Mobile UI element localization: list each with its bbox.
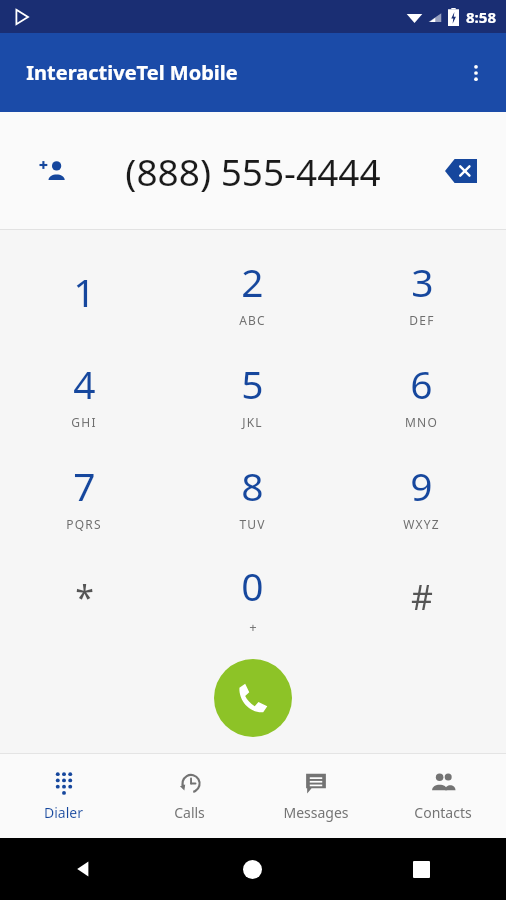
button[interactable]: # — [337, 546, 506, 648]
staticText: 3 — [411, 255, 434, 308]
staticText: 4 — [73, 357, 96, 410]
staticText: JKL — [242, 414, 263, 430]
button[interactable]: Add contact — [30, 148, 76, 194]
staticText: 8:58 — [466, 7, 496, 27]
staticText: 9 — [410, 459, 433, 512]
staticText: Dialer — [44, 803, 83, 822]
staticText: TUV — [239, 516, 266, 532]
staticText: Contacts — [414, 803, 472, 822]
button[interactable]: 3 — [337, 240, 506, 342]
staticText: 5 — [241, 357, 264, 410]
button[interactable]: 0 — [168, 546, 337, 648]
button[interactable]: 5 — [168, 342, 337, 444]
button[interactable]: 2 — [168, 240, 337, 342]
button[interactable]: Calls — [126, 754, 252, 838]
button[interactable]: 1 — [0, 240, 168, 342]
staticText: PQRS — [66, 516, 102, 532]
staticText: * — [75, 574, 94, 620]
button[interactable]: Messages — [252, 754, 379, 838]
button[interactable]: More options — [454, 51, 498, 95]
staticText: 6 — [410, 357, 433, 410]
button[interactable]: Call — [214, 659, 292, 737]
staticText: 8 — [241, 459, 264, 512]
button[interactable]: 9 — [337, 444, 506, 546]
staticText: MNO — [405, 414, 438, 430]
staticText: InteractiveTel Mobile — [26, 59, 238, 86]
button[interactable]: 7 — [0, 444, 168, 546]
staticText: 7 — [73, 459, 96, 512]
button[interactable]: 6 — [337, 342, 506, 444]
staticText: Messages — [283, 803, 349, 822]
button[interactable]: Home — [168, 838, 337, 900]
staticText: (888) 555-4444 — [125, 146, 381, 196]
button[interactable]: 4 — [0, 342, 168, 444]
staticText: 1 — [73, 265, 96, 318]
staticText: GHI — [71, 414, 97, 430]
staticText: WXYZ — [403, 516, 440, 532]
button[interactable]: Dialer — [0, 754, 126, 838]
button[interactable]: Recents — [337, 838, 506, 900]
button[interactable]: 8 — [168, 444, 337, 546]
staticText: DEF — [409, 312, 435, 328]
button[interactable]: Contacts — [379, 754, 506, 838]
staticText: 2 — [241, 255, 264, 308]
staticText: # — [411, 574, 433, 620]
staticText: + — [249, 618, 257, 636]
button[interactable]: Back — [0, 838, 168, 900]
button[interactable]: * — [0, 546, 168, 648]
button[interactable]: Backspace — [438, 148, 484, 194]
staticText: Calls — [174, 803, 205, 822]
staticText: 0 — [241, 559, 264, 612]
staticText: ABC — [239, 312, 266, 328]
